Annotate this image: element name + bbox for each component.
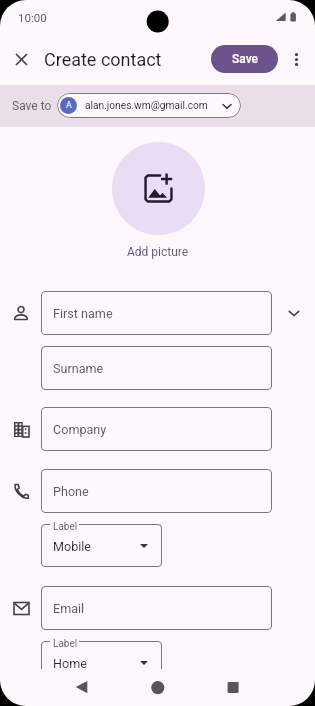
staticText: Label	[53, 521, 78, 532]
button[interactable]: Expand name fields	[282, 301, 306, 325]
button[interactable]: Home	[139, 669, 176, 706]
button[interactable]: Recent apps	[214, 669, 251, 706]
staticText: A	[66, 100, 72, 111]
button[interactable]: Home	[41, 641, 162, 669]
button[interactable]: Company	[41, 407, 272, 451]
button[interactable]: Surname	[41, 346, 272, 390]
button[interactable]: Add picture	[112, 142, 205, 235]
staticText: 10:00	[18, 11, 47, 24]
staticText: Create contact	[44, 49, 162, 70]
button[interactable]: Phone	[41, 469, 272, 513]
staticText: Save to	[12, 99, 52, 113]
staticText: Mobile	[53, 539, 92, 554]
button[interactable]: Back	[63, 669, 100, 706]
staticText: Company	[53, 422, 107, 437]
button[interactable]: More options	[284, 47, 308, 71]
staticText: Surname	[53, 361, 104, 376]
staticText: Phone	[53, 484, 89, 499]
staticText: Home	[53, 656, 87, 669]
button[interactable]: Save	[211, 45, 278, 73]
button[interactable]: Mobile	[41, 524, 162, 567]
staticText: Add picture	[127, 245, 189, 259]
staticText: Label	[53, 638, 78, 649]
button[interactable]: Email	[41, 586, 272, 630]
button[interactable]: Close	[9, 47, 33, 71]
staticText: First name	[53, 306, 113, 321]
staticText: alan.jones.wm@gmail.com	[85, 100, 208, 112]
staticText: Save	[232, 52, 258, 66]
button[interactable]: A	[57, 93, 241, 118]
button[interactable]: First name	[41, 291, 272, 335]
staticText: Email	[53, 601, 85, 616]
